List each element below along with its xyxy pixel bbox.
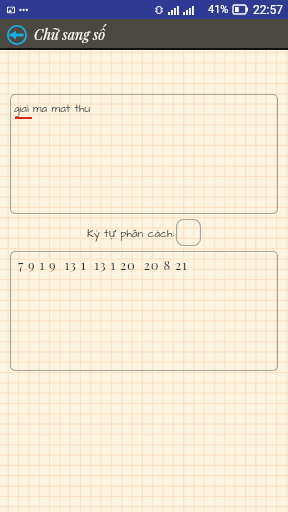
button[interactable]: 7 9 1 9 13 1 13 1 20 20 8 21 xyxy=(10,251,278,371)
button[interactable] xyxy=(176,219,201,246)
button[interactable]: giai ma mat thu xyxy=(10,94,278,214)
staticText: giai ma mat thu xyxy=(14,101,91,116)
staticText: 22:57 xyxy=(253,3,283,17)
button[interactable]: Back xyxy=(7,25,27,45)
staticText: 7 9 1 9 13 1 13 1 20 20 8 21 xyxy=(18,256,188,273)
staticText: Ký tự phân cách: xyxy=(87,225,175,241)
staticText: Chữ sang số xyxy=(34,25,106,44)
staticText: 41% xyxy=(208,3,229,16)
